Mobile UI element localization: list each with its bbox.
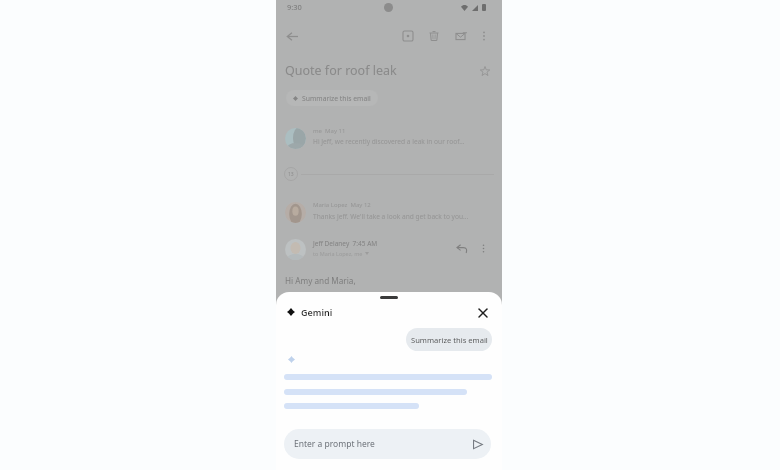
button[interactable]: Back	[282, 26, 302, 46]
button[interactable]: Star	[478, 64, 492, 78]
button[interactable]: Summarize this email	[406, 328, 492, 351]
button[interactable]: Close	[475, 305, 491, 321]
staticText: Hi Jeff, we recently discovered a leak i…	[313, 137, 495, 146]
button[interactable]: More	[475, 240, 491, 256]
staticText: Maria Lopez May 12	[313, 201, 371, 209]
staticText: Jeff Delaney 7:45 AM	[313, 239, 378, 248]
button[interactable]: Mark unread	[451, 26, 471, 46]
button[interactable]: Gemini	[287, 306, 333, 318]
button[interactable]: More options	[474, 26, 494, 46]
staticText: 13	[288, 171, 294, 178]
button[interactable]: Archive	[398, 26, 418, 46]
button[interactable]: Send	[470, 437, 484, 451]
staticText: to Maria Lopez, me	[313, 250, 363, 257]
staticText: Gemini	[301, 306, 333, 318]
button[interactable]: Reply	[454, 240, 470, 256]
staticText: Enter a prompt here	[294, 438, 375, 450]
staticText: Summarize this email	[411, 335, 488, 345]
button[interactable]: Summarize this email	[286, 90, 378, 106]
button[interactable]: Delete	[424, 26, 444, 46]
staticText: Thanks Jeff. We'll take a look and get b…	[313, 212, 495, 221]
button[interactable]: Enter a prompt here	[284, 429, 491, 459]
staticText: me May 11	[313, 127, 346, 135]
staticText: Quote for roof leak	[285, 62, 397, 79]
staticText: Summarize this email	[302, 94, 371, 103]
staticText: 9:30	[287, 2, 302, 12]
staticText: Hi Amy and Maria,	[285, 275, 356, 286]
